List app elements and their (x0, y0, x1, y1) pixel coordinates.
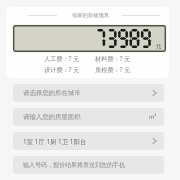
staticText: 材料费：? 元 (95, 54, 131, 62)
staticText: m² (149, 113, 157, 121)
button[interactable]: House area (13, 108, 164, 126)
staticText: 设计费：? 元 (44, 65, 80, 73)
staticText: 你家的装修预算 (72, 12, 110, 19)
button[interactable]: Phone number (13, 156, 164, 174)
staticText: 质检费：? 元 (95, 65, 131, 73)
button[interactable]: Select city (13, 84, 164, 102)
staticText: 输入号码，报价结果将发送到您的手机 (23, 161, 125, 169)
staticText: 请输入您的房屋面积 (23, 113, 81, 121)
button[interactable]: Room layout (13, 132, 164, 150)
staticText: 人工费：? 元 (44, 54, 80, 62)
staticText: 1室 1厅 1厨 1卫 1阳台 (23, 137, 87, 146)
staticText: 元 (156, 43, 162, 50)
staticText: 请选择您的所在城市 (23, 89, 81, 97)
